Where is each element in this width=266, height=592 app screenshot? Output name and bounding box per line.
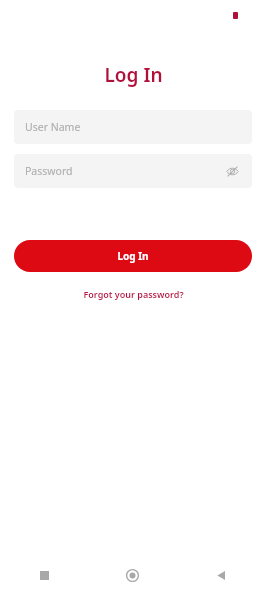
staticText: Log In [117,249,149,263]
staticText: Forgot your password? [83,288,184,300]
button[interactable]: Password [14,154,252,188]
button[interactable]: Log In [14,240,252,272]
staticText: User Name [25,120,241,134]
staticText: Password [25,164,223,178]
staticText: Log In [104,62,163,88]
button[interactable]: Home [88,558,177,592]
button[interactable]: Forgot your password? [77,286,190,302]
button[interactable]: Back [177,558,266,592]
button[interactable]: User Name [14,110,252,144]
button[interactable]: Recent apps [0,558,88,592]
button[interactable]: Show password [223,162,241,180]
